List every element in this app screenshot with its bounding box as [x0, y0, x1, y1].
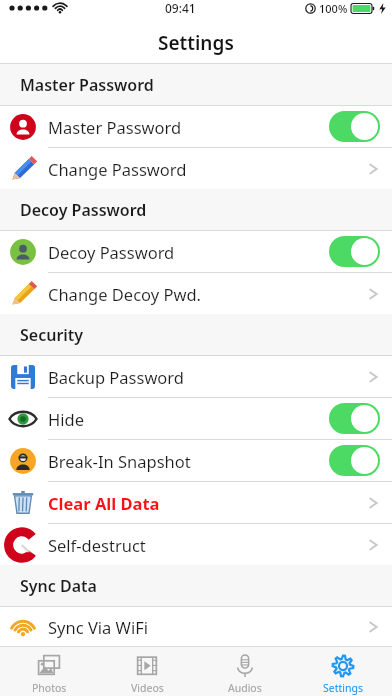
button[interactable]: Videos — [98, 649, 196, 695]
button[interactable] — [329, 236, 380, 267]
staticText: Change Password — [48, 158, 368, 180]
staticText: Sync Data — [20, 575, 97, 597]
button[interactable] — [329, 403, 380, 434]
staticText: Master Password — [20, 74, 154, 96]
staticText: Clear All Data — [48, 492, 368, 514]
button[interactable]: Self-destruct — [0, 524, 392, 565]
staticText: Settings — [323, 681, 363, 695]
staticText: Self-destruct — [48, 534, 368, 556]
button[interactable]: Change Decoy Pwd. — [0, 273, 392, 314]
other: Audios — [232, 653, 258, 679]
staticText: Hide — [48, 408, 329, 430]
staticText: 09:41 — [165, 0, 196, 16]
button[interactable] — [329, 111, 380, 142]
button[interactable]: Photos — [0, 649, 98, 695]
button[interactable]: Master Password — [0, 106, 392, 147]
button[interactable]: Settings — [294, 649, 392, 695]
staticText: 100% — [319, 1, 348, 16]
staticText: Sync Via WiFi — [48, 616, 368, 638]
button[interactable]: Backup Password — [0, 356, 392, 397]
other: Photos — [36, 653, 62, 679]
other: Settings — [330, 653, 356, 679]
staticText: Security — [20, 324, 84, 346]
staticText: Photos — [32, 681, 67, 695]
other: Videos — [134, 653, 160, 679]
staticText: Videos — [131, 681, 164, 695]
button[interactable]: Change Password — [0, 148, 392, 189]
button[interactable]: Hide — [0, 398, 392, 439]
staticText: Audios — [228, 681, 262, 695]
button[interactable]: Break-In Snapshot — [0, 440, 392, 481]
button[interactable]: Sync Via WiFi — [0, 607, 392, 646]
staticText: Decoy Password — [20, 199, 147, 221]
button[interactable]: Clear All Data — [0, 482, 392, 523]
staticText: Break-In Snapshot — [48, 450, 329, 472]
staticText: Backup Password — [48, 366, 368, 388]
staticText: Decoy Password — [48, 241, 329, 263]
staticText: Settings — [158, 30, 234, 56]
staticText: Change Decoy Pwd. — [48, 283, 368, 305]
button[interactable] — [329, 445, 380, 476]
button[interactable]: Decoy Password — [0, 231, 392, 272]
staticText: Master Password — [48, 116, 329, 138]
button[interactable]: Audios — [196, 649, 294, 695]
